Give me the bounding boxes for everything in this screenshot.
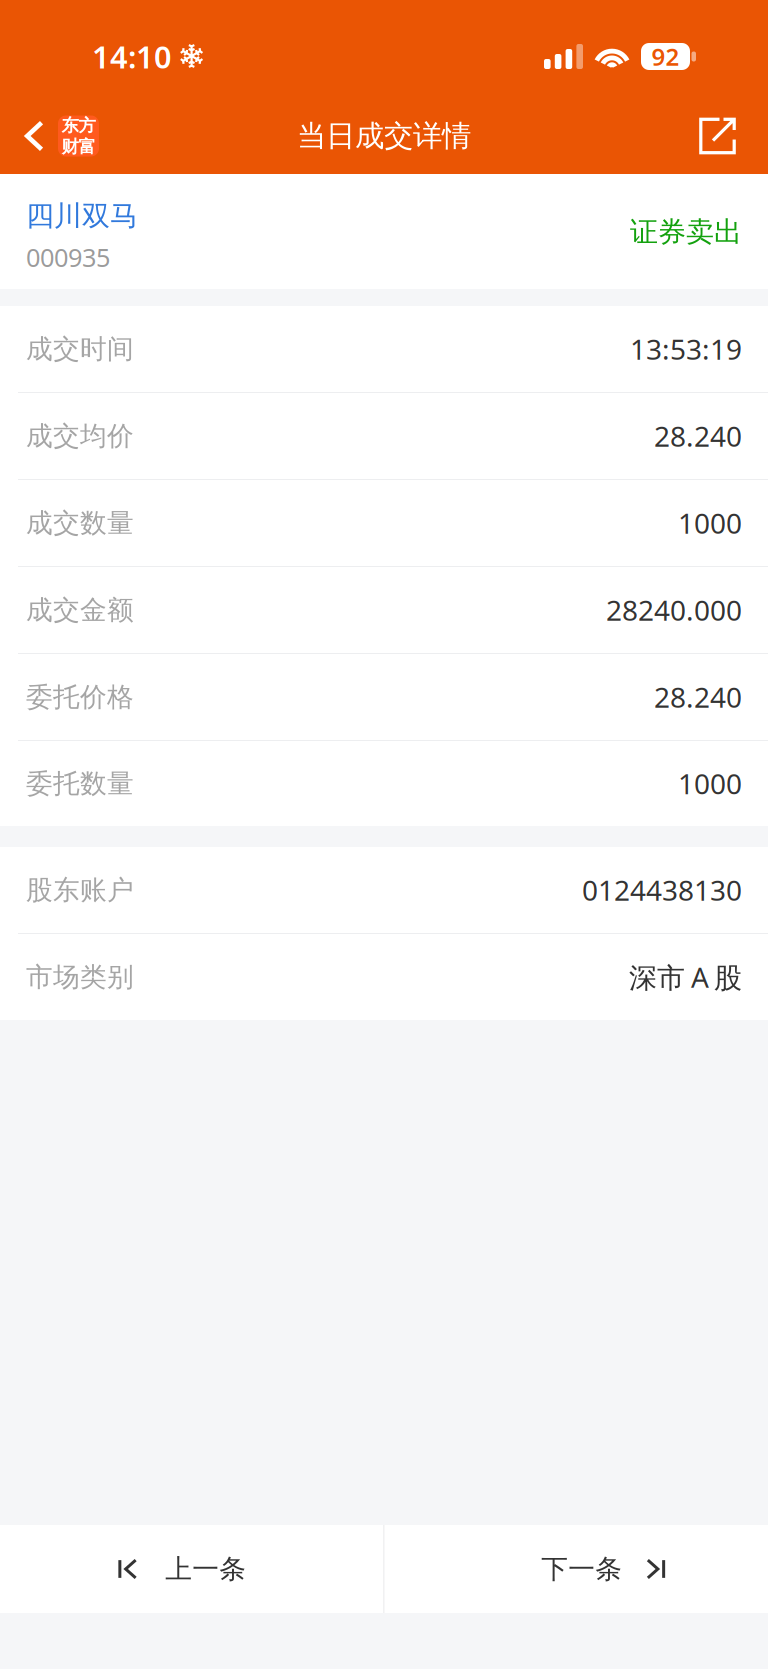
staticText: 股东账户 [26, 874, 134, 906]
staticText: 当日成交详情 [297, 118, 471, 154]
staticText: 深市 A 股 [629, 958, 742, 996]
staticText: 财富 [61, 136, 95, 157]
staticText: 市场类别 [26, 961, 134, 993]
staticText: 证券卖出 [630, 215, 742, 249]
staticText: 1000 [678, 765, 742, 802]
staticText: 委托数量 [26, 767, 134, 800]
button[interactable]: 返回 [0, 98, 117, 174]
staticText: 东方 [61, 115, 95, 136]
staticText: 成交数量 [26, 507, 134, 539]
button[interactable]: 分享 [675, 98, 768, 174]
staticText: 000935 [26, 240, 110, 274]
staticText: 成交时间 [26, 333, 134, 365]
staticText: 1000 [678, 504, 742, 542]
staticText: 下一条 [541, 1553, 622, 1585]
button[interactable]: 上一条 [0, 1525, 383, 1613]
staticText: 28.240 [654, 417, 742, 455]
staticText: 28240.000 [606, 591, 742, 629]
staticText: 委托价格 [26, 681, 134, 713]
staticText: 13:53:19 [630, 330, 742, 368]
staticText: 14:10 [92, 36, 172, 77]
staticText: 92 [651, 41, 679, 72]
button[interactable]: 下一条 [384, 1525, 768, 1613]
staticText: 28.240 [654, 678, 742, 716]
staticText: 成交金额 [26, 594, 134, 626]
staticText: 四川双马 [26, 199, 138, 233]
staticText: 上一条 [165, 1553, 246, 1585]
staticText: 0124438130 [582, 871, 742, 909]
staticText: 成交均价 [26, 420, 134, 452]
